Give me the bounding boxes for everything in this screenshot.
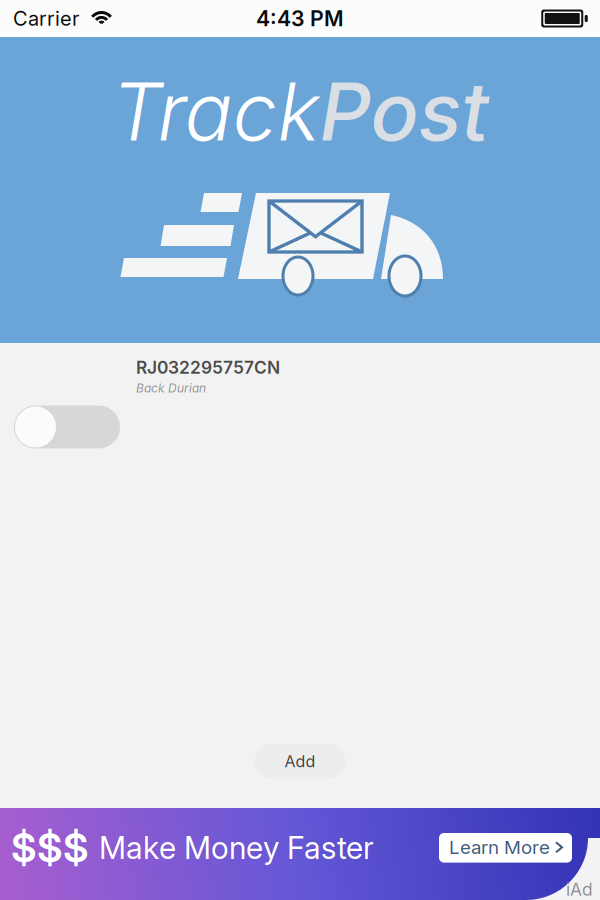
staticText: Learn More bbox=[449, 836, 550, 859]
staticText: 4:43 PM bbox=[256, 6, 344, 31]
button[interactable]: Delivered toggle bbox=[14, 405, 120, 448]
staticText: Post bbox=[319, 63, 488, 160]
staticText: $$$ bbox=[11, 824, 89, 872]
button[interactable]: Learn More bbox=[439, 833, 572, 863]
staticText: Add bbox=[284, 752, 315, 771]
staticText: iAd bbox=[566, 879, 593, 900]
staticText: Track bbox=[111, 63, 319, 160]
staticText: Back Durian bbox=[136, 381, 206, 395]
staticText: RJ032295757CN bbox=[136, 357, 280, 378]
staticText: Carrier bbox=[13, 6, 79, 31]
button[interactable]: Add bbox=[254, 744, 345, 779]
staticText: Make Money Faster bbox=[99, 829, 374, 866]
